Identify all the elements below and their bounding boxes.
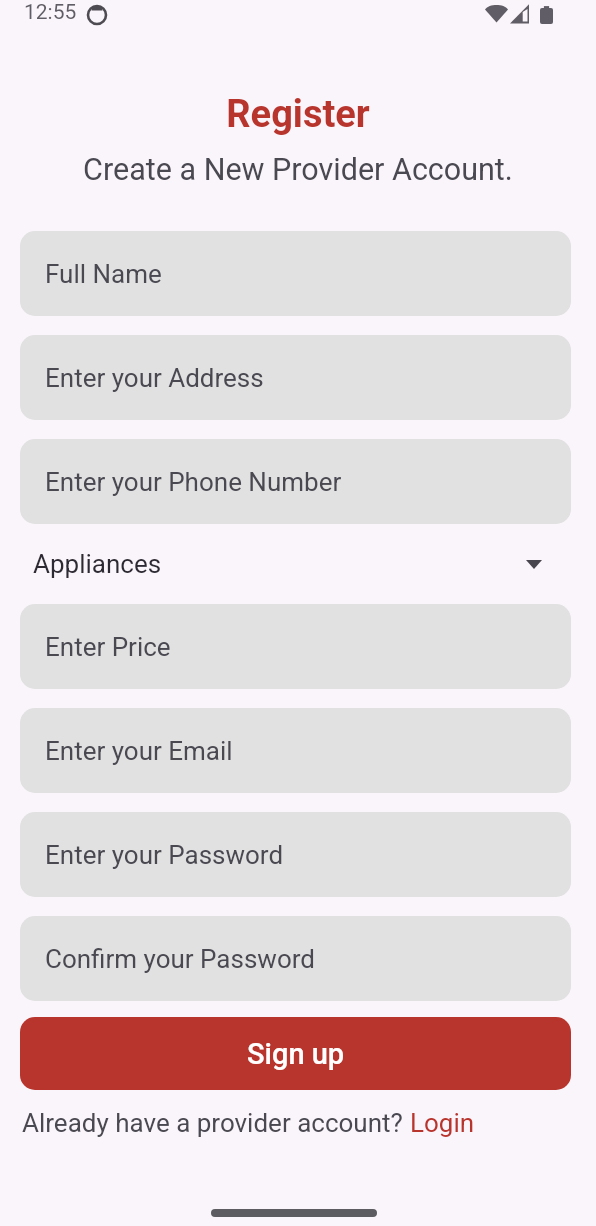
button[interactable]: Enter Price (20, 604, 571, 689)
staticText: Full Name (45, 259, 162, 289)
staticText: Enter your Email (45, 736, 233, 766)
button[interactable]: Full Name (20, 231, 571, 316)
button[interactable]: Enter your Password (20, 812, 571, 897)
staticText: Enter your Phone Number (45, 467, 342, 497)
button[interactable]: Appliances (20, 524, 571, 604)
staticText: Sign up (247, 1037, 345, 1071)
button[interactable]: Sign up (20, 1017, 571, 1090)
staticText: 12:55 (24, 0, 77, 25)
staticText: Already have a provider account? (22, 1108, 410, 1138)
staticText: Confirm your Password (45, 944, 315, 974)
button[interactable]: Enter your Email (20, 708, 571, 793)
staticText: Create a New Provider Account. (0, 152, 596, 188)
button[interactable]: Login (410, 1108, 475, 1138)
staticText: Enter your Address (45, 363, 264, 393)
staticText: Enter Price (45, 632, 171, 662)
staticText: Register (0, 92, 596, 137)
staticText: Enter your Password (45, 840, 284, 870)
staticText: Appliances (33, 549, 162, 579)
button[interactable]: Confirm your Password (20, 916, 571, 1001)
button[interactable]: Enter your Phone Number (20, 439, 571, 524)
button[interactable]: Enter your Address (20, 335, 571, 420)
